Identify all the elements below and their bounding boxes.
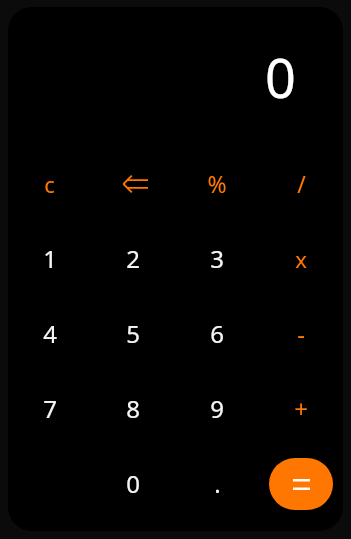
button[interactable]: 1 xyxy=(8,221,91,296)
button[interactable]: 4 xyxy=(8,296,91,371)
staticText: + xyxy=(294,392,308,425)
staticText: 0 xyxy=(265,40,296,114)
staticText: / xyxy=(297,168,306,199)
button[interactable]: x xyxy=(259,221,343,296)
staticText: . xyxy=(214,467,221,500)
staticText: - xyxy=(297,317,305,350)
button[interactable]: 3 xyxy=(175,221,259,296)
button[interactable]: 6 xyxy=(175,296,259,371)
staticText: 9 xyxy=(210,392,224,425)
staticText: 1 xyxy=(43,242,57,275)
button[interactable]: Equals xyxy=(269,458,333,510)
button[interactable]: 0 xyxy=(91,446,175,521)
button[interactable]: 7 xyxy=(8,371,91,446)
staticText: 6 xyxy=(210,317,224,350)
button[interactable]: 9 xyxy=(175,371,259,446)
staticText: 2 xyxy=(126,242,140,275)
button[interactable]: c xyxy=(8,146,91,221)
staticText: % xyxy=(207,168,227,199)
staticText: 3 xyxy=(210,242,224,275)
button[interactable]: 8 xyxy=(91,371,175,446)
staticText: c xyxy=(44,169,55,199)
button[interactable]: Backspace xyxy=(91,146,175,221)
staticText: 5 xyxy=(126,317,140,350)
button[interactable]: 5 xyxy=(91,296,175,371)
staticText: 0 xyxy=(126,467,140,500)
staticText: 7 xyxy=(43,392,57,425)
button[interactable]: . xyxy=(175,446,259,521)
button[interactable]: + xyxy=(259,371,343,446)
staticText: x xyxy=(295,244,307,274)
button[interactable]: - xyxy=(259,296,343,371)
staticText: 4 xyxy=(43,317,57,350)
button[interactable]: / xyxy=(259,146,343,221)
button[interactable]: % xyxy=(175,146,259,221)
button[interactable]: 2 xyxy=(91,221,175,296)
staticText: 8 xyxy=(126,392,140,425)
